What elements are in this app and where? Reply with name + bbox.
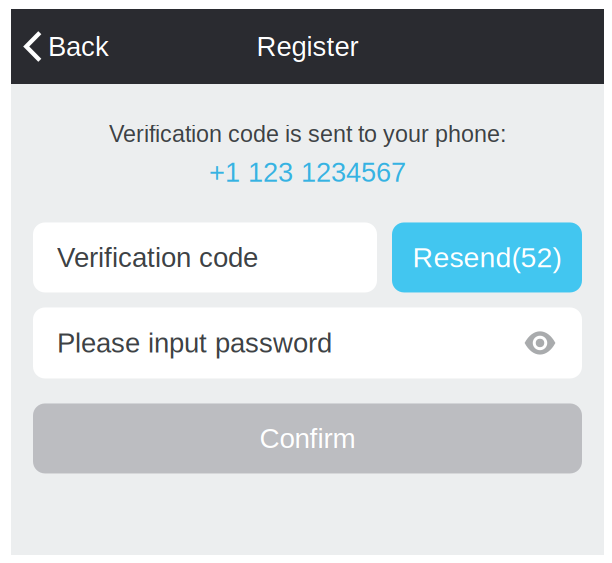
staticText: Register xyxy=(256,31,358,62)
button[interactable]: Show password xyxy=(518,321,562,365)
staticText: Verification code xyxy=(57,242,258,273)
button[interactable]: Resend(52) xyxy=(392,222,582,292)
button[interactable]: Confirm xyxy=(33,403,582,473)
staticText: Please input password xyxy=(57,328,332,358)
button[interactable]: Back xyxy=(11,9,121,84)
staticText: Back xyxy=(48,31,109,62)
staticText: Verification code is sent to your phone: xyxy=(109,121,506,147)
staticText: +1 123 1234567 xyxy=(209,157,406,187)
staticText: Resend(52) xyxy=(412,242,561,273)
staticText: Confirm xyxy=(259,423,355,454)
